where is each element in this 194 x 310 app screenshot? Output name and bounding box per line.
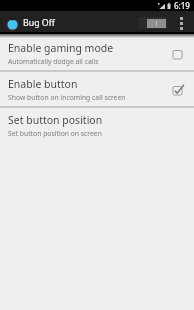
staticText: 6:19 — [174, 0, 190, 11]
staticText: Enable gaming mode — [8, 41, 114, 55]
button[interactable]: Set button position — [0, 108, 194, 142]
button[interactable]: Enable gaming mode — [0, 36, 194, 70]
button[interactable]: More options — [176, 14, 186, 32]
staticText: Set button position on screen — [8, 129, 102, 138]
staticText: Show button on incoming call screen — [8, 93, 126, 102]
staticText: Bug Off — [23, 17, 55, 29]
button[interactable]: Enable Bug Off service — [139, 17, 167, 29]
button[interactable]: Enable button — [0, 72, 194, 106]
staticText: Set button position — [8, 113, 103, 127]
staticText: Enable button — [8, 77, 78, 91]
staticText: Automatically dodge all calls — [8, 57, 99, 66]
